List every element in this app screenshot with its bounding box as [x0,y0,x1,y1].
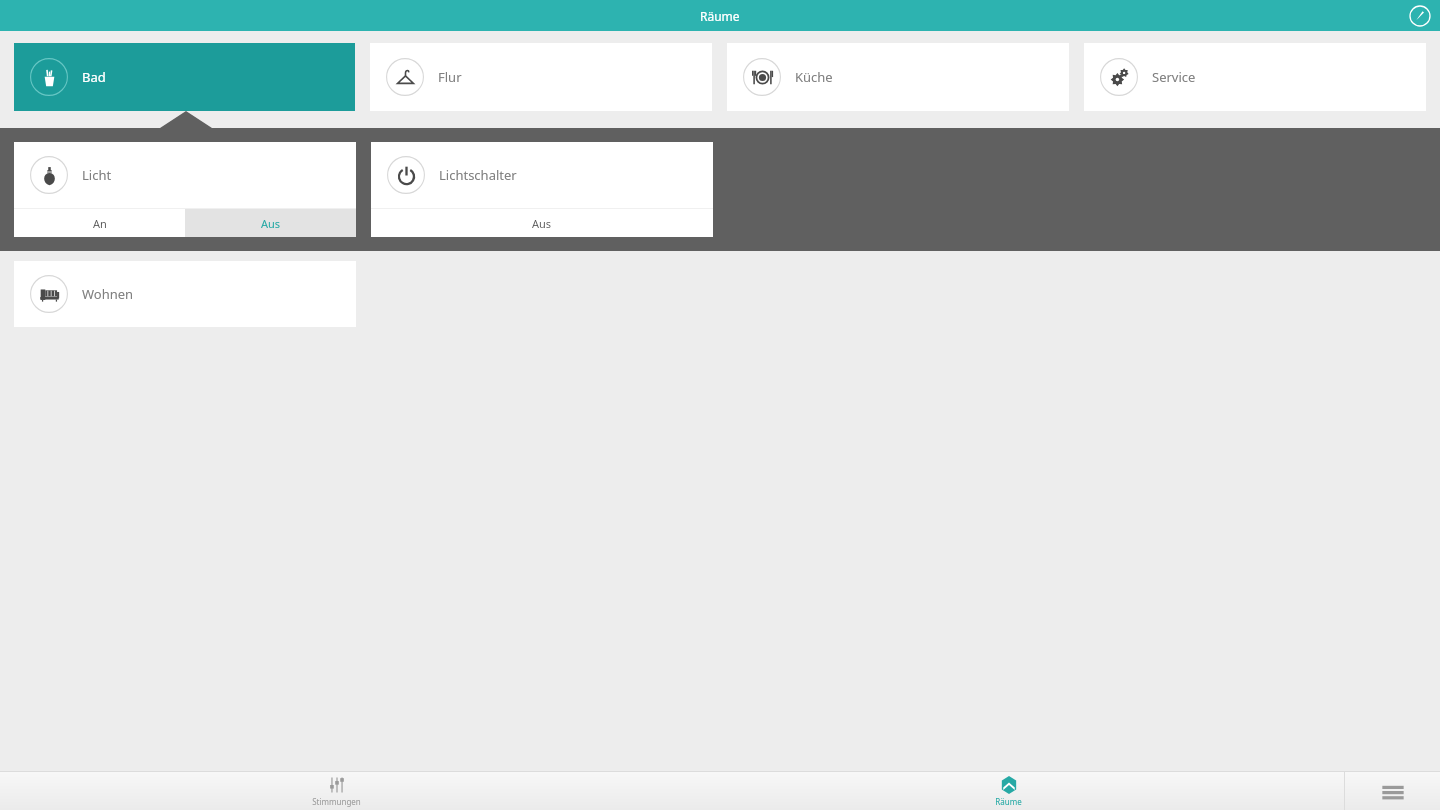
staticText: Aus [532,216,552,231]
button[interactable]: Service [1084,43,1426,111]
staticText: Licht [82,166,112,184]
button[interactable]: Edit [1408,4,1432,28]
staticText: Lichtschalter [439,166,517,184]
staticText: Räume [995,796,1022,807]
staticText: Stimmungen [312,796,361,807]
staticText: Flur [438,68,462,86]
button[interactable]: Menu [1345,772,1440,810]
staticText: Service [1152,68,1196,86]
button[interactable]: Flur [370,43,712,111]
button[interactable]: Räume [672,772,1344,810]
button[interactable]: Aus [185,209,356,237]
button[interactable]: Stimmungen [0,772,672,810]
button[interactable]: An [14,209,185,237]
staticText: Räume [700,8,740,24]
button[interactable]: Küche [727,43,1069,111]
button[interactable]: Bad [14,43,355,111]
staticText: Bad [82,68,106,86]
button[interactable]: Licht [14,142,356,208]
button[interactable]: Wohnen [14,261,356,327]
staticText: Küche [795,68,833,86]
staticText: Wohnen [82,285,134,303]
staticText: An [93,216,107,231]
staticText: Aus [261,216,281,231]
button[interactable]: Aus [371,209,713,237]
button[interactable]: Lichtschalter [371,142,713,208]
